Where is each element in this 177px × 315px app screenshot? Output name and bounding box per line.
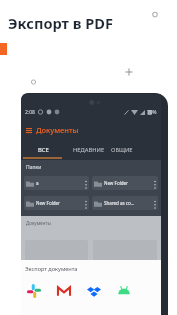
staticText: New Folder [36,200,84,206]
button[interactable]: Slack [27,284,41,298]
button[interactable]: New Folder [24,196,89,210]
staticText: НЕДАВНИЕ [73,146,105,154]
staticText: 70% [147,109,157,116]
staticText: Экспорт в PDF [8,13,114,33]
staticText: ВСЕ [38,146,49,154]
staticText: Документы [26,220,51,226]
staticText: New Folder [104,180,153,186]
button[interactable]: Android [117,284,131,298]
button[interactable]: Gmail [57,284,71,298]
button[interactable]: НЕДАВНИЕ [68,139,110,160]
staticText: Shared as co… [104,200,153,206]
button[interactable]: a [24,176,89,190]
button[interactable]: Shared as co… [92,196,158,210]
staticText: a [36,180,84,186]
button[interactable]: Dropbox [87,284,101,298]
staticText: Документы [36,125,79,135]
staticText: 2:08 [25,109,35,116]
staticText: Папки [26,164,42,171]
staticText: ОБЩИЕ [111,146,133,154]
button[interactable]: New Folder [92,176,158,190]
button[interactable]: ВСЕ [21,139,65,160]
staticText: Экспорт документа [25,265,78,273]
button[interactable]: ОБЩИЕ [107,139,136,160]
